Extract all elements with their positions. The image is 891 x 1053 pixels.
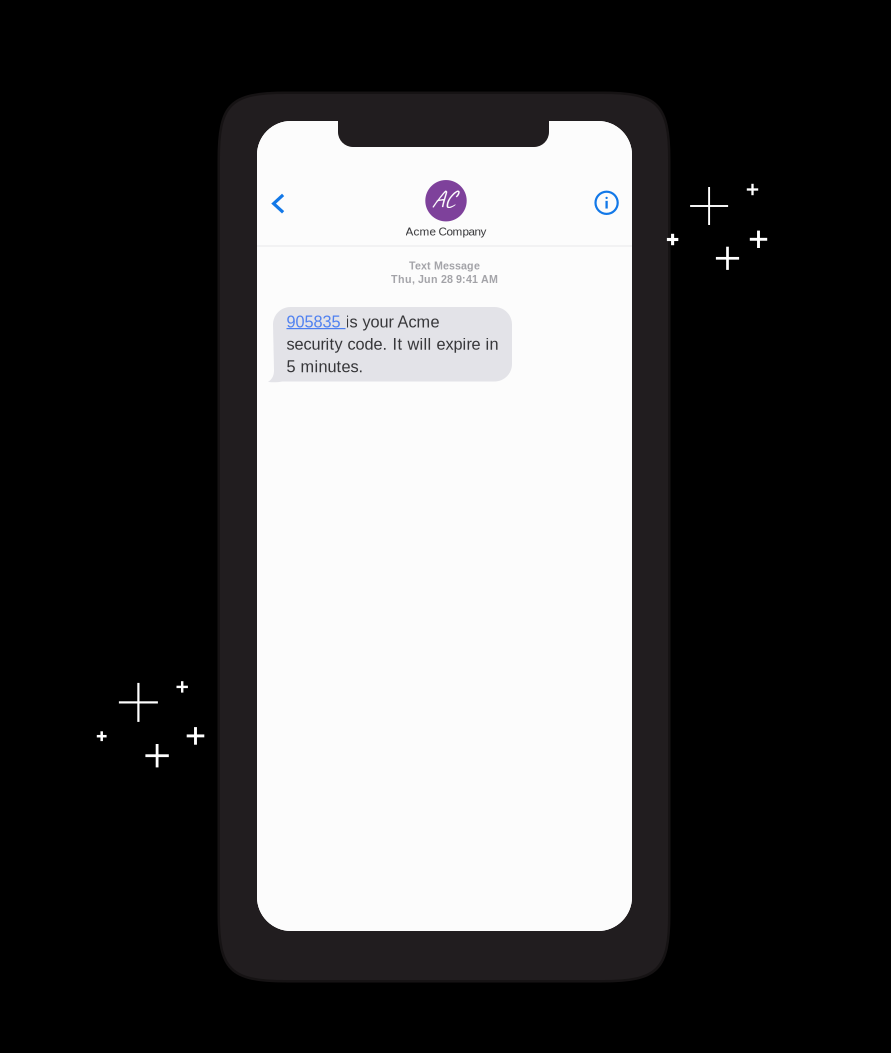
staticText: 905835 <box>286 313 345 331</box>
staticText: is your Acme <box>345 313 439 331</box>
staticText: 5 minutes. <box>286 357 363 376</box>
button[interactable]: Back <box>255 180 301 226</box>
staticText: Acme Company <box>405 225 486 238</box>
button[interactable]: Details <box>584 180 630 226</box>
staticText: Thu, Jun 28 9:41 AM <box>391 273 498 285</box>
staticText: AC <box>431 183 454 214</box>
staticText: security code. It will expire in <box>286 335 498 353</box>
staticText: Text Message <box>409 260 480 272</box>
button[interactable]: AC <box>356 180 536 238</box>
